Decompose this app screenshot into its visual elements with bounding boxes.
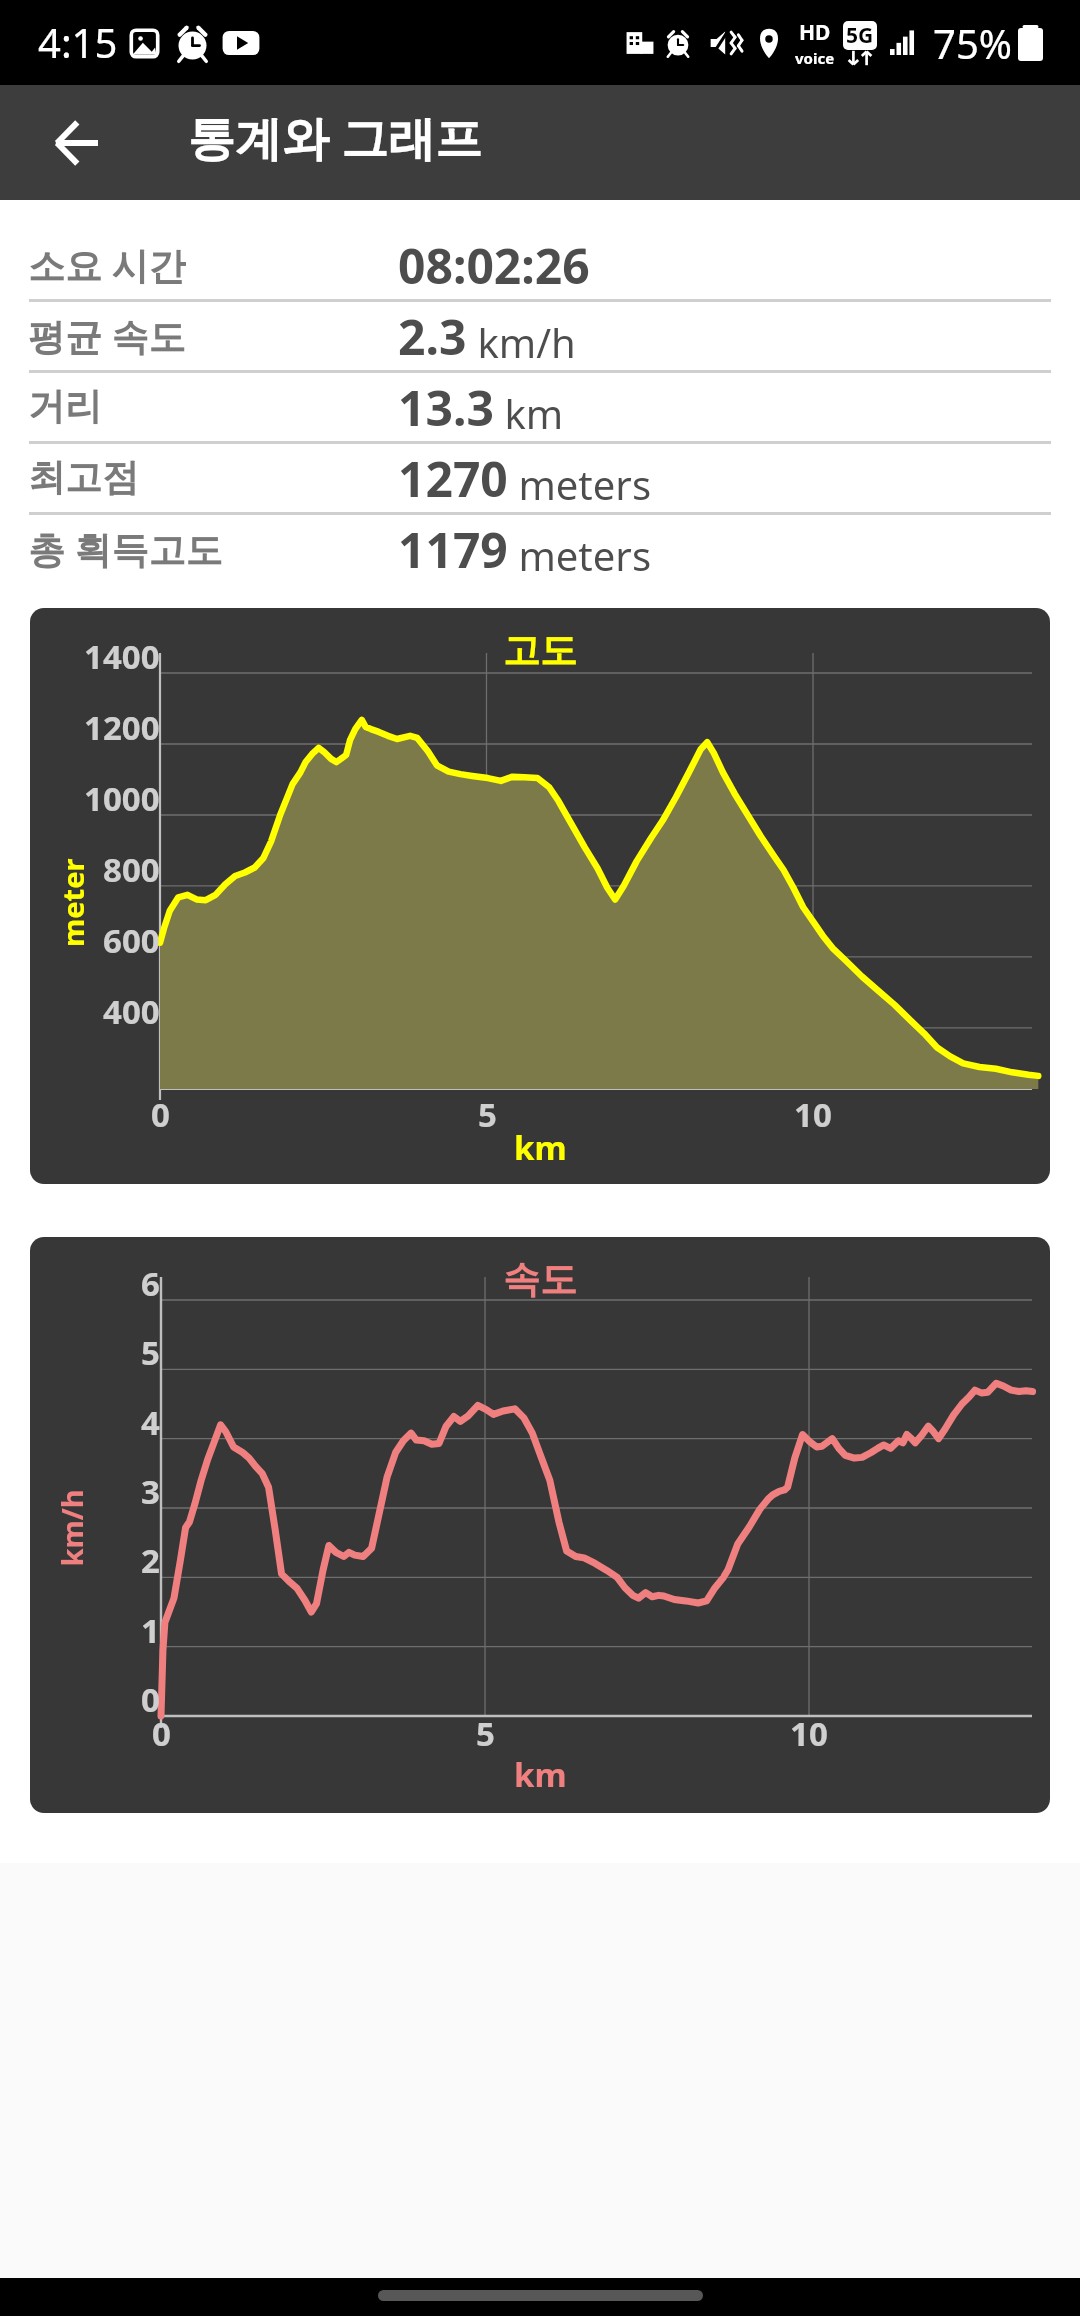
staticText: 1 [141, 1608, 160, 1653]
staticText: 0 [151, 1092, 170, 1137]
staticText: 0 [152, 1711, 171, 1756]
button[interactable]: Back [38, 105, 114, 181]
staticText: 통계와 그래프 [188, 105, 483, 169]
staticText: 10 [790, 1711, 828, 1756]
staticText: 75% [933, 16, 1012, 70]
staticText: 거리 [28, 383, 102, 430]
staticText: meters [508, 528, 652, 582]
staticText: 5G [846, 21, 874, 50]
staticText: 600 [103, 918, 160, 963]
staticText: 08:02:26 [398, 233, 590, 298]
staticText: km [494, 386, 564, 440]
staticText: 1400 [84, 634, 160, 679]
staticText: 1000 [84, 776, 160, 821]
staticText: 2 [141, 1538, 160, 1583]
staticText: km [514, 1752, 567, 1797]
staticText: 5 [476, 1711, 495, 1756]
staticText: 소요 시간 [28, 239, 186, 290]
staticText: 10 [794, 1092, 832, 1137]
staticText: meter [53, 858, 92, 947]
staticText: 5 [478, 1092, 497, 1137]
button[interactable]: 최고점 [0, 444, 1080, 515]
staticText: 1270 [398, 446, 508, 511]
button[interactable]: 평균 속도 [0, 302, 1080, 373]
button[interactable]: 총 획득고도 [0, 515, 1080, 586]
staticText: voice [795, 48, 835, 68]
staticText: 최고점 [28, 454, 139, 501]
button[interactable]: 소요 시간 [0, 231, 1080, 302]
staticText: 4 [141, 1400, 160, 1445]
staticText: 13.3 [398, 375, 494, 440]
staticText: 4:15 [38, 15, 118, 69]
staticText: 0 [141, 1677, 160, 1722]
staticText: meters [508, 457, 652, 511]
staticText: km [514, 1125, 567, 1170]
staticText: 2.3 [398, 304, 467, 369]
staticText: 400 [103, 989, 160, 1034]
staticText: 800 [103, 847, 160, 892]
staticText: 총 획득고도 [28, 523, 223, 574]
staticText: 6 [141, 1261, 160, 1306]
staticText: 속도 [503, 1256, 577, 1303]
staticText: 3 [141, 1469, 160, 1514]
staticText: 고도 [503, 627, 577, 674]
staticText: km/h [51, 1488, 90, 1566]
button[interactable]: 거리 [0, 373, 1080, 444]
staticText: 평균 속도 [28, 310, 186, 361]
staticText: HD [799, 18, 831, 47]
staticText: 5 [141, 1330, 160, 1375]
staticText: 1200 [84, 705, 160, 750]
staticText: 1179 [398, 517, 508, 582]
staticText: km/h [467, 315, 576, 369]
